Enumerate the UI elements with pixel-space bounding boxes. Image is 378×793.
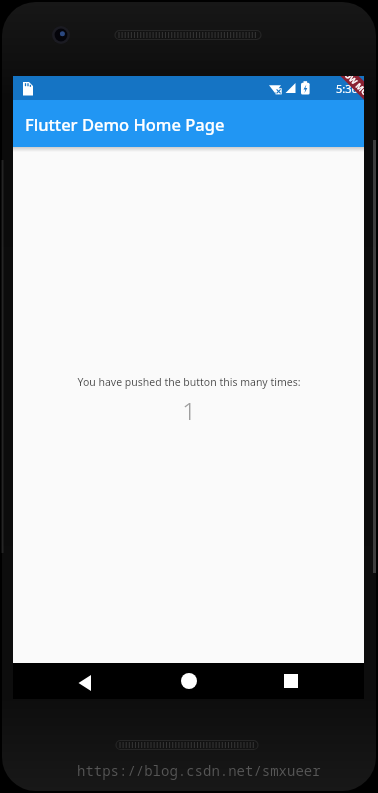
staticText: Flutter Demo Home Page bbox=[25, 113, 225, 135]
staticText: SLOW MODE bbox=[336, 76, 364, 105]
button[interactable]: Home bbox=[169, 663, 209, 699]
staticText: https://blog.csdn.net/smxueer bbox=[77, 761, 321, 780]
staticText: You have pushed the button this many tim… bbox=[77, 375, 301, 389]
button[interactable]: Recents bbox=[271, 663, 311, 699]
button[interactable]: Back bbox=[67, 663, 107, 699]
staticText: 5:36 bbox=[336, 81, 358, 96]
staticText: 1 bbox=[182, 394, 196, 427]
